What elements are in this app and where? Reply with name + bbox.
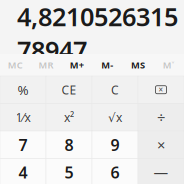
- button[interactable]: 9: [92, 131, 138, 158]
- button[interactable]: √x: [92, 103, 138, 131]
- staticText: %: [17, 81, 28, 99]
- staticText: 4: [18, 162, 27, 183]
- staticText: ÷: [157, 107, 165, 127]
- button[interactable]: ×: [138, 131, 184, 158]
- staticText: 8: [64, 134, 73, 155]
- button[interactable]: 4: [0, 158, 46, 184]
- staticText: 5: [64, 162, 73, 183]
- button[interactable]: 8: [46, 131, 92, 158]
- staticText: MS: [131, 59, 145, 71]
- button[interactable]: M+: [61, 54, 92, 76]
- staticText: M-: [101, 59, 113, 71]
- staticText: CE: [61, 82, 76, 98]
- staticText: M˅: [163, 59, 175, 71]
- staticText: MR: [38, 59, 53, 71]
- staticText: √x: [108, 109, 122, 125]
- button[interactable]: x²: [46, 103, 92, 131]
- button[interactable]: M-: [92, 54, 123, 76]
- button[interactable]: ÷: [138, 103, 184, 131]
- button[interactable]: Backspace: [138, 76, 184, 103]
- button[interactable]: —: [138, 158, 184, 184]
- button[interactable]: 7: [0, 131, 46, 158]
- button[interactable]: CE: [46, 76, 92, 103]
- button[interactable]: C: [92, 76, 138, 103]
- staticText: 6: [110, 162, 119, 183]
- staticText: ×: [157, 135, 165, 154]
- staticText: 4,821052631578947: [17, 0, 178, 67]
- button[interactable]: MS: [123, 54, 153, 76]
- staticText: x²: [64, 109, 74, 125]
- staticText: M+: [70, 59, 84, 71]
- button[interactable]: MR: [31, 54, 61, 76]
- staticText: C: [111, 82, 119, 98]
- staticText: —: [153, 162, 168, 182]
- button[interactable]: %: [0, 76, 46, 103]
- staticText: 1⁄x: [15, 109, 30, 125]
- staticText: MC: [8, 59, 23, 71]
- button[interactable]: 6: [92, 158, 138, 184]
- staticText: 7: [18, 134, 27, 155]
- button[interactable]: 1⁄x: [0, 103, 46, 131]
- staticText: 9: [110, 134, 119, 155]
- button[interactable]: MC: [0, 54, 31, 76]
- staticText: ×: [158, 84, 163, 95]
- button[interactable]: M˅: [153, 54, 184, 76]
- button[interactable]: 5: [46, 158, 92, 184]
